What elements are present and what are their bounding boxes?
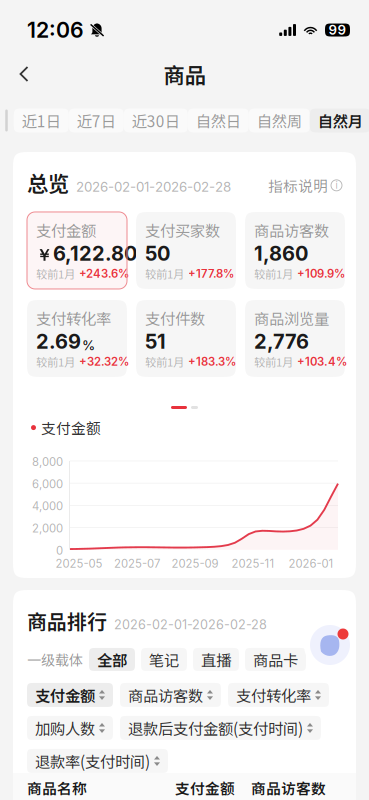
staticText: 50 <box>145 241 170 265</box>
button[interactable]: 商品卡 <box>245 648 306 671</box>
staticText: 支付买家数 <box>145 219 220 241</box>
staticText: 直播 <box>201 648 231 671</box>
staticText: 4,000 <box>32 499 63 513</box>
staticText: +32.32% <box>79 355 129 368</box>
staticText: 较前1月 <box>254 353 293 370</box>
staticText: 2025-09 <box>171 557 218 570</box>
staticText: 51 <box>145 329 166 353</box>
staticText: 8,000 <box>32 455 63 469</box>
staticText: +109.9% <box>297 267 345 280</box>
staticText: 2,776 <box>254 329 309 353</box>
staticText: 99 <box>328 22 346 38</box>
button[interactable]: 商品访客数 <box>120 683 221 707</box>
staticText: 自然日 <box>196 109 241 132</box>
button[interactable]: 退款率(支付时间) <box>27 749 168 773</box>
staticText: % <box>82 337 95 353</box>
staticText: 商品访客数 <box>254 219 329 241</box>
staticText: 商品访客数 <box>251 777 326 798</box>
button[interactable]: 笔记 <box>141 648 187 671</box>
staticText: 加购人数 <box>35 717 95 739</box>
staticText: 近1日 <box>22 109 61 132</box>
staticText: 商品名称 <box>27 777 87 798</box>
button[interactable]: Assistant <box>302 617 358 673</box>
staticText: 支付转化率 <box>236 684 311 706</box>
staticText: 2026-01 <box>288 557 333 570</box>
staticText: 自然月 <box>318 109 363 132</box>
staticText: 商品排行 <box>27 606 107 635</box>
staticText: 较前1月 <box>36 265 75 282</box>
button[interactable]: 直播 <box>193 648 239 671</box>
staticText: +103.4% <box>297 355 347 368</box>
button[interactable]: 自然月 <box>310 108 369 132</box>
staticText: 自然周 <box>257 109 302 132</box>
staticText: 2025-07 <box>114 557 160 570</box>
staticText: 较前1月 <box>145 353 184 370</box>
button[interactable]: 全部 <box>89 648 135 671</box>
staticText: 2025-11 <box>231 557 274 570</box>
staticText: 0 <box>56 544 63 557</box>
staticText: 商品 <box>163 59 205 89</box>
button[interactable]: 退款后支付金额(支付时间) <box>120 716 321 740</box>
staticText: 2.69 <box>36 329 81 353</box>
staticText: 商品访客数 <box>128 684 203 706</box>
staticText: 支付金额 <box>175 777 235 798</box>
staticText: ￥ <box>36 245 52 265</box>
staticText: 较前1月 <box>254 265 293 282</box>
button[interactable]: 指标说明 <box>268 171 342 200</box>
staticText: 支付件数 <box>145 307 205 329</box>
button[interactable]: 支付金额 <box>27 683 113 707</box>
staticText: 近7日 <box>77 109 116 132</box>
staticText: +183.3% <box>188 355 236 368</box>
button[interactable]: Back <box>0 55 42 93</box>
staticText: 支付金额 <box>36 219 96 241</box>
staticText: 6,122.80 <box>53 241 137 265</box>
button[interactable]: 近7日 <box>69 108 124 132</box>
button[interactable]: 近1日 <box>14 108 69 132</box>
staticText: 一级载体 <box>27 649 83 670</box>
button[interactable]: 支付转化率 <box>228 683 329 707</box>
staticText: 指标说明 <box>268 175 328 196</box>
staticText: 支付转化率 <box>36 307 111 329</box>
staticText: 2026-02-01-2026-02-28 <box>76 179 231 195</box>
staticText: 12:06 <box>27 17 84 43</box>
staticText: 2,000 <box>32 522 63 535</box>
button[interactable]: 加购人数 <box>27 716 113 740</box>
staticText: 2026-02-01-2026-02-28 <box>114 617 267 632</box>
staticText: 较前1月 <box>145 265 184 282</box>
staticText: 退款率(支付时间) <box>35 750 150 772</box>
staticText: 近30日 <box>132 109 180 132</box>
button[interactable]: 自然周 <box>249 108 310 132</box>
staticText: 6,000 <box>32 477 63 491</box>
staticText: 总览 <box>27 167 69 198</box>
staticText: 笔记 <box>149 648 179 671</box>
staticText: +177.8% <box>188 267 234 280</box>
staticText: 2025-05 <box>55 557 102 570</box>
staticText: 支付金额 <box>41 417 101 438</box>
staticText: 1,860 <box>254 241 308 265</box>
staticText: 支付金额 <box>35 684 95 706</box>
staticText: 全部 <box>97 648 127 671</box>
staticText: +243.6% <box>79 267 129 280</box>
button[interactable]: 自然日 <box>188 108 249 132</box>
staticText: i <box>335 180 337 191</box>
button[interactable]: 近30日 <box>124 108 188 132</box>
staticText: 较前1月 <box>36 353 75 370</box>
staticText: 退款后支付金额(支付时间) <box>128 717 303 739</box>
staticText: 商品卡 <box>253 648 298 671</box>
staticText: 商品浏览量 <box>254 307 329 329</box>
